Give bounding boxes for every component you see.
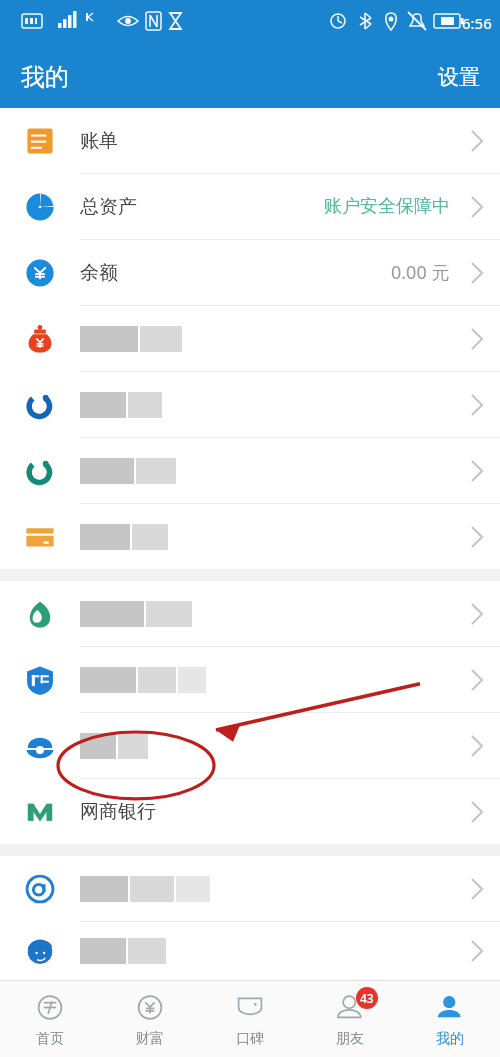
button[interactable]: 总资产 [0,174,500,239]
button[interactable] [0,647,500,712]
staticText: 我的 [21,62,69,92]
button[interactable]: 财富 [100,981,200,1057]
button[interactable]: 首页 [0,981,100,1057]
staticText: 口碑 [236,1030,264,1048]
staticText: 朋友 [336,1030,364,1048]
button[interactable] [0,438,500,503]
button[interactable] [0,306,500,371]
staticText: 财富 [136,1030,164,1048]
staticText: 我的 [436,1030,464,1048]
staticText: 43 [360,990,374,1006]
button[interactable]: 账单 [0,108,500,173]
button[interactable] [0,504,500,569]
button[interactable]: 43 [300,981,400,1057]
staticText: 首页 [36,1030,64,1048]
button[interactable]: 我的 [400,981,500,1057]
staticText: 6:56 [462,13,492,33]
button[interactable] [0,372,500,437]
button[interactable]: 余额 [0,240,500,305]
button[interactable] [0,581,500,646]
button[interactable]: 网商银行 [0,779,500,844]
button[interactable] [0,922,500,980]
staticText: 余额 [80,261,118,285]
button[interactable] [0,856,500,921]
staticText: 总资产 [80,195,137,219]
button[interactable]: 设置 [418,50,500,104]
staticText: 0.00 元 [391,260,450,285]
staticText: 设置 [438,64,480,90]
button[interactable]: 口碑 [200,981,300,1057]
button[interactable] [0,713,500,778]
staticText: 账单 [80,129,118,153]
staticText: 网商银行 [80,800,156,824]
staticText: 账户安全保障中 [324,195,450,218]
